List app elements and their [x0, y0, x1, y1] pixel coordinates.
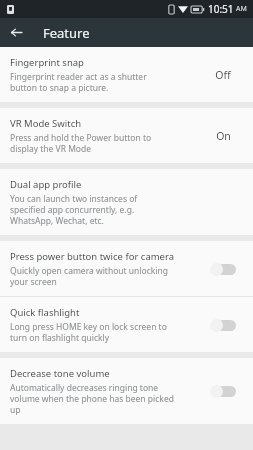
- button[interactable]: Toggle Press power button twice for came…: [201, 258, 245, 280]
- staticText: 10:51: [208, 2, 234, 16]
- button[interactable]: Quick flashlight: [0, 297, 253, 352]
- staticText: Quick flashlight: [10, 306, 80, 319]
- button[interactable]: VR Mode Switch: [0, 108, 253, 163]
- staticText: On: [216, 129, 231, 143]
- button[interactable]: Dual app profile: [0, 169, 253, 235]
- button[interactable]: Press power button twice for camera: [0, 241, 253, 296]
- staticText: AM: [236, 4, 247, 14]
- button[interactable]: Toggle Decrease tone volume: [201, 380, 245, 402]
- button[interactable]: Decrease tone volume: [0, 358, 253, 424]
- staticText: Off: [215, 68, 231, 82]
- staticText: VR Mode Switch: [10, 117, 82, 130]
- staticText: Fingerprint snap: [10, 56, 84, 69]
- staticText: Automatically decreases ringing tone vol…: [10, 382, 174, 415]
- staticText: Press power button twice for camera: [10, 250, 175, 263]
- staticText: You can launch two instances of specifie…: [10, 193, 138, 226]
- staticText: Dual app profile: [10, 178, 82, 191]
- staticText: Feature: [43, 24, 90, 42]
- staticText: Long press HOME key on lock screen to tu…: [10, 321, 167, 343]
- button[interactable]: Back: [0, 18, 32, 47]
- button[interactable]: Fingerprint snap: [0, 47, 253, 102]
- staticText: Decrease tone volume: [10, 367, 110, 380]
- staticText: Press and hold the Power button to displ…: [10, 132, 152, 154]
- staticText: Fingerprint reader act as a shutter butt…: [10, 71, 147, 93]
- button[interactable]: Toggle Quick flashlight: [201, 314, 245, 336]
- staticText: Quickly open camera without unlocking yo…: [10, 265, 168, 287]
